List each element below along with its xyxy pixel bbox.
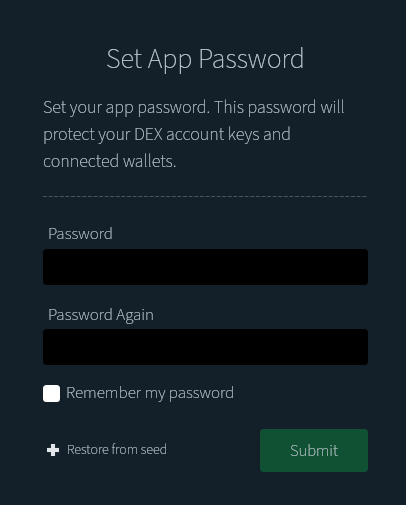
staticText: Password <box>48 222 113 246</box>
staticText: Remember my password <box>66 381 235 405</box>
staticText: Password Again <box>48 303 155 327</box>
staticText: Set App Password <box>43 39 368 79</box>
staticText: Restore from seed <box>67 440 168 460</box>
button[interactable]: Add <box>47 440 168 460</box>
staticText: Submit <box>290 439 338 462</box>
button[interactable]: Remember my password <box>43 381 235 405</box>
button[interactable]: Submit <box>260 429 368 472</box>
other: Add <box>47 444 59 456</box>
staticText: Set your app password. This password wil… <box>43 95 365 175</box>
